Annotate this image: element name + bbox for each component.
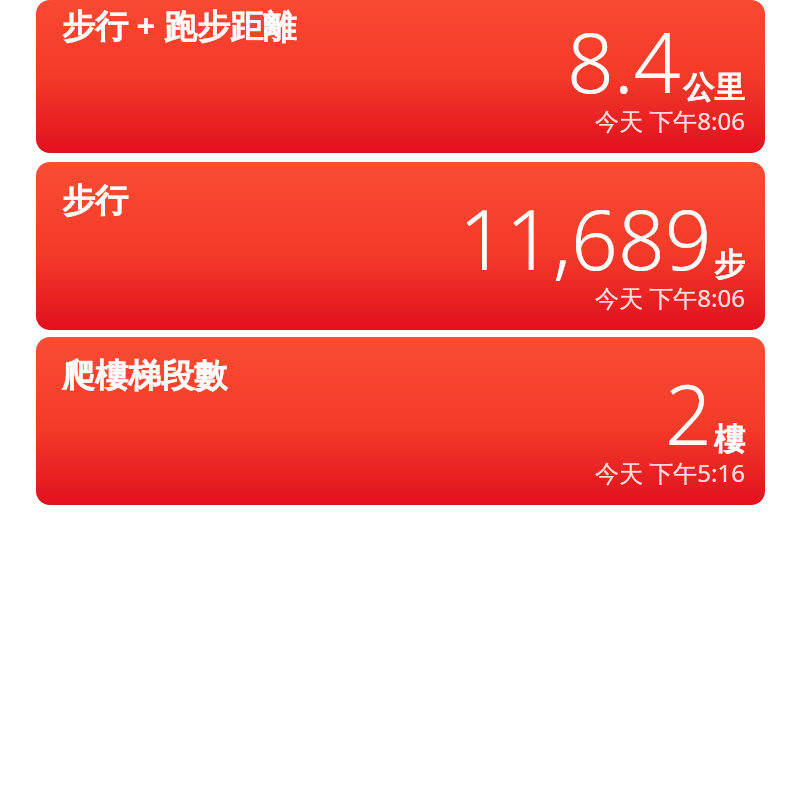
staticText: 公里 [683, 68, 745, 107]
staticText: 步行 + 跑步距離 [62, 3, 297, 48]
staticText: 2 [665, 357, 712, 469]
staticText: 樓 [714, 420, 745, 459]
staticText: 11,689 [459, 182, 712, 294]
staticText: 今天 下午8:06 [595, 104, 745, 137]
staticText: 步行 [62, 180, 128, 222]
staticText: 今天 下午8:06 [595, 281, 745, 314]
staticText: 8.4 [567, 5, 681, 117]
staticText: 步 [714, 245, 745, 284]
button[interactable]: 爬樓梯段數 [36, 337, 765, 505]
staticText: 今天 下午5:16 [595, 456, 745, 489]
button[interactable]: 步行 + 跑步距離 [36, 0, 765, 153]
button[interactable]: 步行 [36, 162, 765, 330]
staticText: 爬樓梯段數 [62, 355, 227, 397]
